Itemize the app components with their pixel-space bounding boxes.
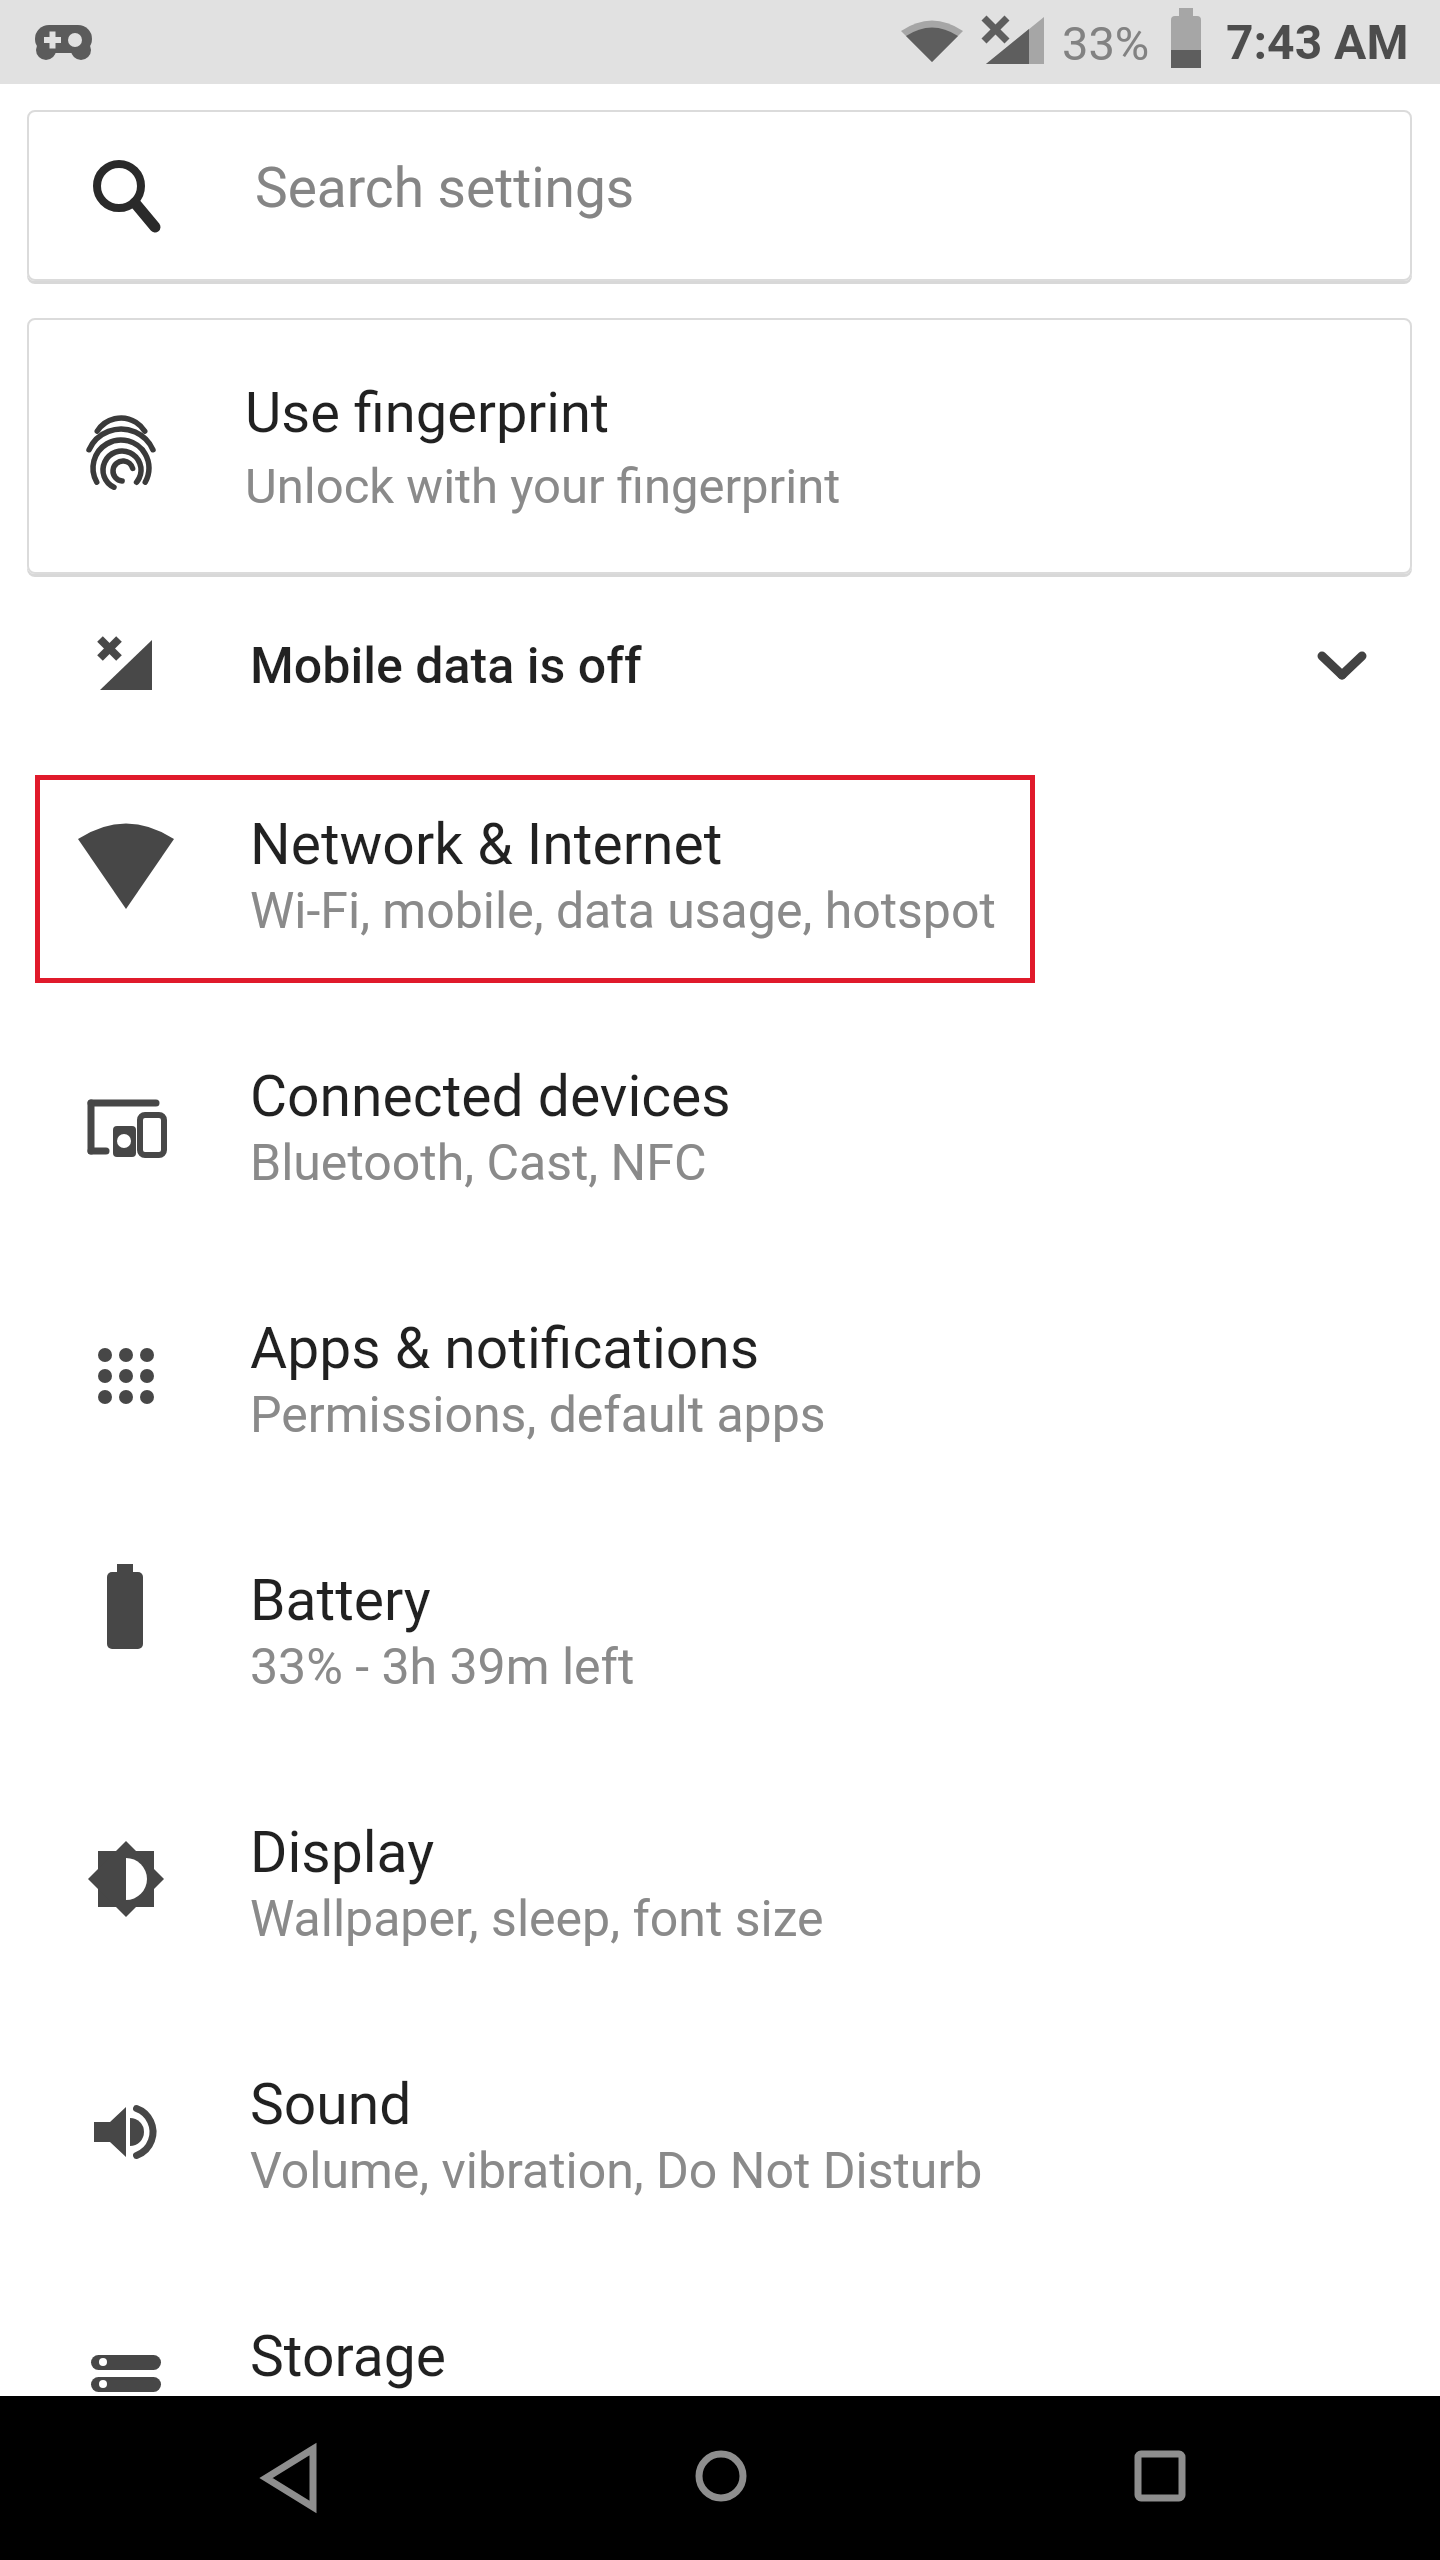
staticText: 7:43 AM bbox=[1226, 14, 1409, 70]
button[interactable]: Search settings bbox=[27, 110, 1412, 281]
button[interactable]: Connected devices bbox=[0, 1008, 1440, 1260]
staticText: 33% bbox=[1062, 16, 1150, 71]
staticText: Wallpaper, sleep, font size bbox=[250, 1890, 824, 1949]
button[interactable]: Use fingerprint bbox=[27, 318, 1412, 574]
staticText: Permissions, default apps bbox=[250, 1386, 826, 1445]
staticText: Volume, vibration, Do Not Disturb bbox=[250, 2142, 983, 2201]
button[interactable]: Battery bbox=[0, 1512, 1440, 1764]
button[interactable]: Sound bbox=[0, 2016, 1440, 2268]
button[interactable] bbox=[670, 2426, 770, 2526]
staticText: Mobile data is off bbox=[250, 637, 642, 696]
button[interactable]: Display bbox=[0, 1764, 1440, 2016]
staticText: Connected devices bbox=[250, 1063, 731, 1130]
staticText: Wi-Fi, mobile, data usage, hotspot bbox=[250, 882, 996, 941]
staticText: Apps & notifications bbox=[250, 1315, 760, 1382]
staticText: Search settings bbox=[255, 156, 635, 220]
staticText: Bluetooth, Cast, NFC bbox=[250, 1134, 707, 1193]
staticText: Battery bbox=[250, 1567, 431, 1634]
staticText: Sound bbox=[250, 2071, 412, 2138]
button[interactable]: Storage bbox=[0, 2268, 1440, 2520]
button[interactable] bbox=[1110, 2426, 1210, 2526]
staticText: Network & Internet bbox=[250, 811, 723, 878]
button[interactable]: Network & Internet bbox=[0, 756, 1440, 1008]
button[interactable]: Mobile data is off bbox=[0, 575, 1440, 756]
staticText: 33% - 3h 39m left bbox=[250, 1638, 635, 1697]
button[interactable]: Apps & notifications bbox=[0, 1260, 1440, 1512]
staticText: Display bbox=[250, 1819, 435, 1886]
staticText: Unlock with your fingerprint bbox=[245, 458, 841, 515]
staticText: Storage bbox=[250, 2323, 446, 2390]
staticText: Use fingerprint bbox=[245, 380, 610, 446]
button[interactable] bbox=[240, 2426, 340, 2526]
